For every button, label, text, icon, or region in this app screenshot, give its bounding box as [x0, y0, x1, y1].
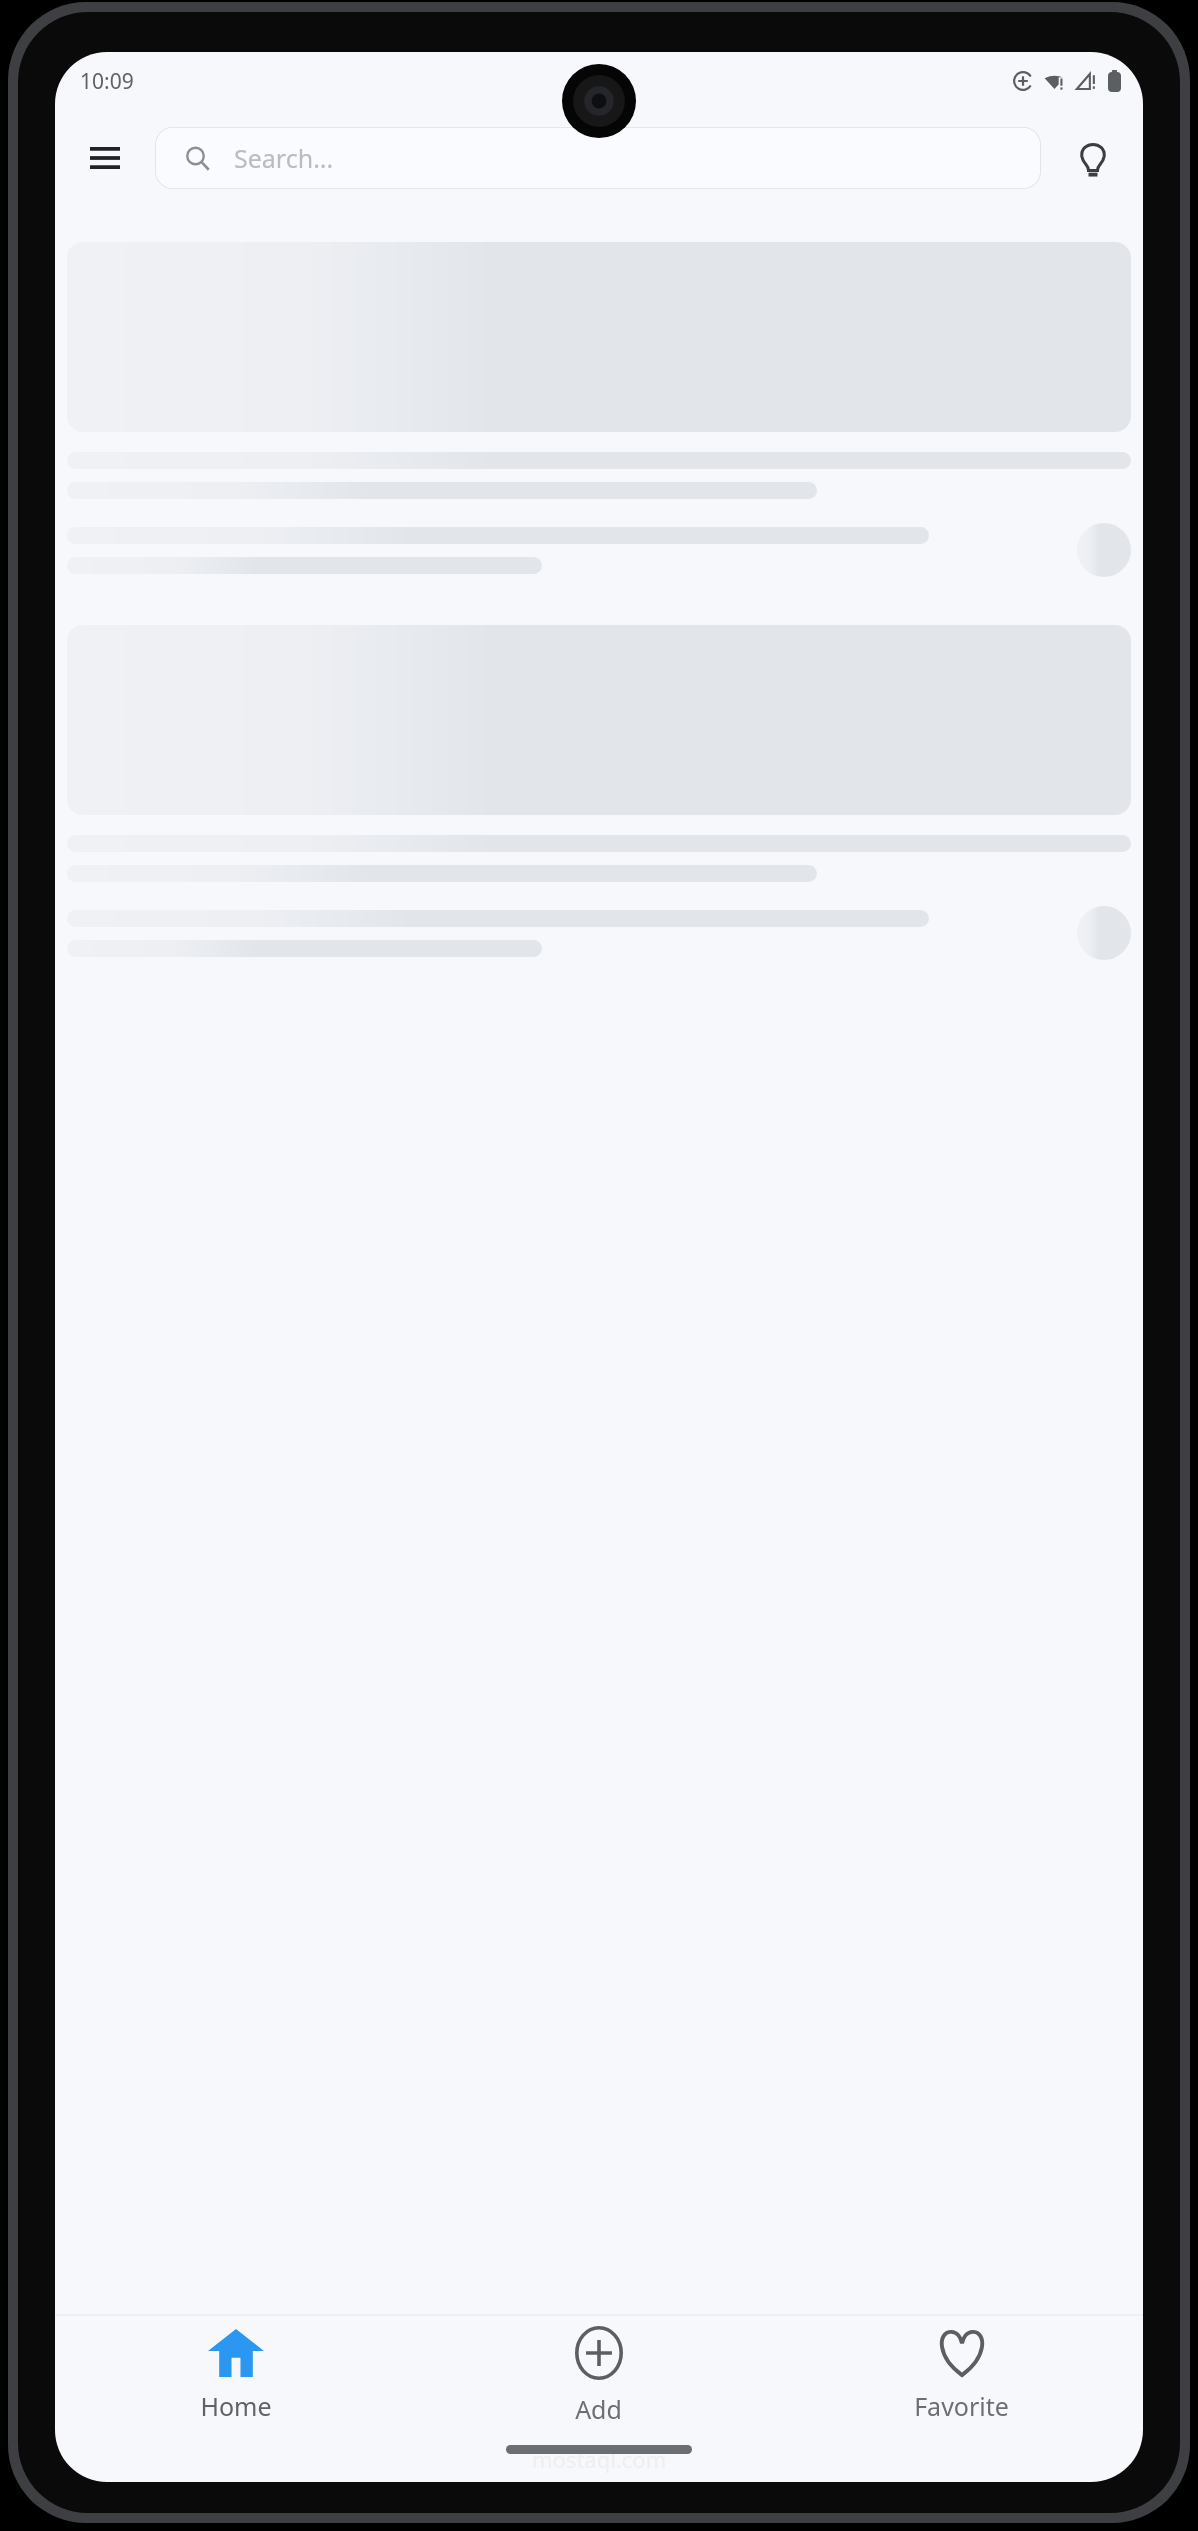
button[interactable]: [67, 242, 1131, 432]
button[interactable]: Add: [417, 2316, 780, 2436]
staticText: mostaql.com: [532, 2444, 667, 2474]
staticText: Home: [200, 2389, 272, 2423]
button[interactable]: Ideas: [1065, 130, 1121, 186]
button[interactable]: Menu: [77, 130, 133, 186]
button[interactable]: Favorite: [780, 2316, 1143, 2436]
staticText: 10:09: [80, 67, 134, 96]
button[interactable]: [67, 625, 1131, 815]
button[interactable]: Search...: [155, 127, 1041, 189]
button[interactable]: Home: [55, 2316, 417, 2436]
staticText: Search...: [234, 141, 334, 175]
staticText: Add: [575, 2392, 622, 2426]
staticText: Favorite: [914, 2389, 1009, 2423]
